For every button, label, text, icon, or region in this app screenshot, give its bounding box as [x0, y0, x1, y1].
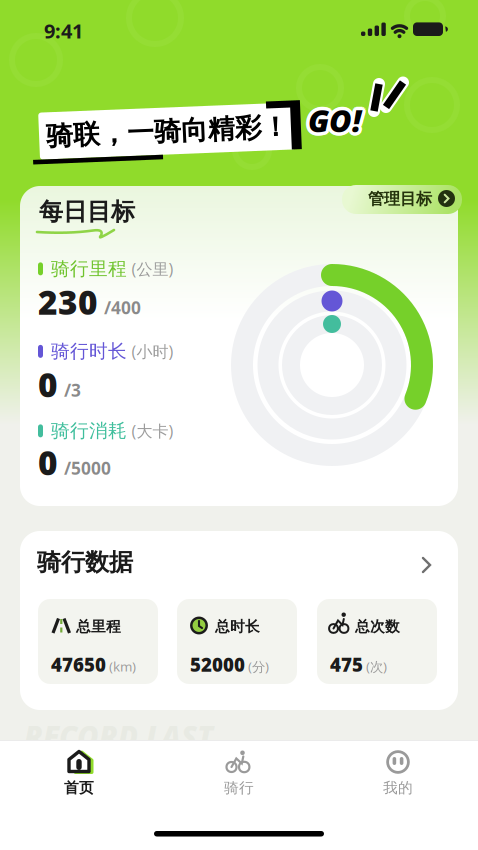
staticText: GO!	[311, 100, 364, 141]
staticText: GO!	[311, 102, 364, 142]
staticText: 52000	[190, 652, 245, 677]
staticText: (分)	[248, 658, 269, 675]
staticText: GO!	[308, 103, 361, 144]
staticText: GO!	[310, 97, 363, 138]
staticText: 骑行	[224, 779, 254, 797]
staticText: GO!	[308, 100, 361, 141]
staticText: (公里)	[131, 258, 173, 279]
staticText: /3	[64, 378, 81, 401]
staticText: 47650	[51, 652, 106, 677]
staticText: 9:41	[44, 17, 83, 44]
staticText: GO!	[305, 102, 358, 142]
button[interactable]: 首页	[39, 746, 119, 802]
staticText: (次)	[366, 658, 387, 675]
staticText: /5000	[64, 456, 111, 479]
staticText: GO!	[308, 97, 361, 137]
button[interactable]: 管理目标	[342, 185, 462, 214]
staticText: 总里程	[76, 617, 121, 635]
staticText: 475	[330, 652, 363, 677]
staticText: 0	[38, 362, 58, 407]
staticText: /400	[104, 296, 141, 319]
staticText: 总次数	[355, 617, 400, 635]
staticText: RECORD LAST	[24, 717, 213, 756]
staticText: (小时)	[131, 341, 173, 362]
staticText: 骑行数据	[37, 547, 133, 577]
staticText: GO!	[306, 103, 359, 144]
staticText: 骑行消耗	[51, 419, 127, 442]
staticText: 总时长	[215, 617, 260, 635]
staticText: 首页	[64, 779, 94, 797]
staticText: 我的	[383, 779, 413, 797]
staticText: (大卡)	[131, 420, 173, 441]
staticText: (km)	[109, 658, 136, 675]
button[interactable]: 我的	[358, 746, 438, 802]
staticText: 骑联，一骑向精彩！	[46, 115, 289, 148]
staticText: GO!	[305, 98, 358, 139]
staticText: 0	[38, 440, 58, 485]
staticText: 管理目标	[368, 189, 432, 209]
button[interactable]: 骑行	[199, 746, 279, 802]
staticText: 230	[38, 280, 98, 324]
staticText: GO!	[310, 103, 363, 144]
staticText: GO!	[306, 97, 359, 138]
staticText: GO!	[311, 98, 364, 139]
staticText: GO!	[305, 100, 358, 141]
staticText: 骑行时长	[51, 340, 127, 363]
button[interactable]: 骑行数据	[20, 531, 458, 710]
staticText: 骑行里程	[51, 257, 127, 280]
staticText: 每日目标	[39, 197, 135, 226]
